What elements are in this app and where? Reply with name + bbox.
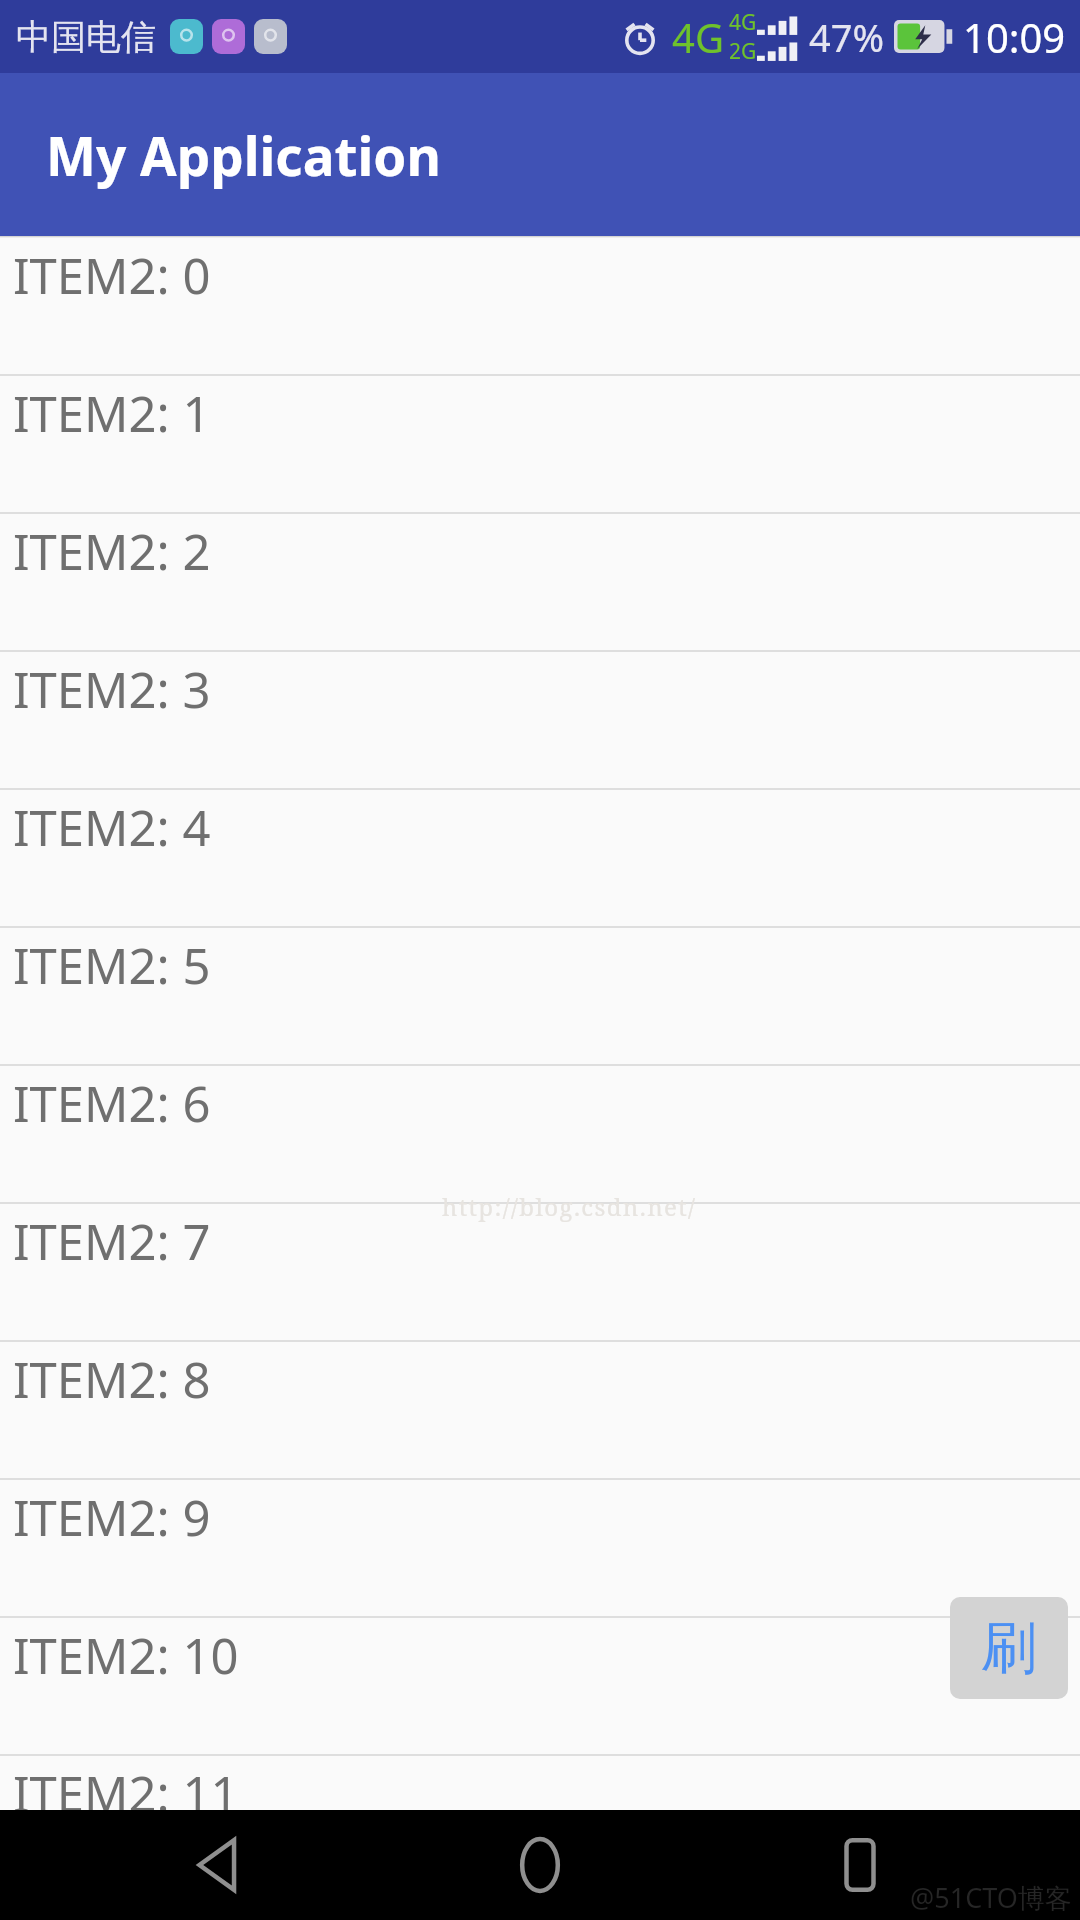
- button[interactable]: ITEM2: 1: [0, 376, 1080, 514]
- button[interactable]: 刷: [950, 1597, 1068, 1699]
- staticText: 刷: [981, 1613, 1037, 1684]
- button[interactable]: ITEM2: 0: [0, 238, 1080, 376]
- staticText: ITEM2: 10: [13, 1622, 239, 1689]
- staticText: 2G: [729, 37, 757, 66]
- staticText: ITEM2: 11: [13, 1760, 239, 1810]
- staticText: 4G: [729, 8, 757, 37]
- button[interactable]: ITEM2: 7: [0, 1204, 1080, 1342]
- button[interactable]: ITEM2: 8: [0, 1342, 1080, 1480]
- staticText: ITEM2: 6: [13, 1070, 211, 1137]
- staticText: 4G: [672, 10, 724, 64]
- staticText: ITEM2: 4: [13, 794, 211, 861]
- staticText: 47%: [809, 11, 885, 63]
- staticText: ITEM2: 9: [13, 1484, 211, 1551]
- button[interactable]: ITEM2: 11: [0, 1756, 1080, 1810]
- button[interactable]: ITEM2: 3: [0, 652, 1080, 790]
- staticText: ITEM2: 0: [13, 242, 211, 309]
- staticText: ITEM2: 5: [13, 932, 211, 999]
- button[interactable]: ITEM2: 2: [0, 514, 1080, 652]
- button[interactable]: ITEM2: 9: [0, 1480, 1080, 1618]
- button[interactable]: ITEM2: 10: [0, 1618, 1080, 1756]
- staticText: ITEM2: 3: [13, 656, 211, 723]
- button[interactable]: ITEM2: 4: [0, 790, 1080, 928]
- staticText: ITEM2: 7: [13, 1208, 211, 1275]
- staticText: ITEM2: 2: [13, 518, 211, 585]
- staticText: ITEM2: 8: [13, 1346, 211, 1413]
- button[interactable]: Home: [440, 1810, 640, 1920]
- button[interactable]: Recents: [760, 1810, 960, 1920]
- staticText: @51CTO博客: [910, 1879, 1072, 1916]
- button[interactable]: Back: [120, 1810, 320, 1920]
- button[interactable]: ITEM2: 5: [0, 928, 1080, 1066]
- staticText: My Application: [46, 119, 441, 191]
- staticText: http://blog.csdn.net/: [442, 1190, 697, 1223]
- staticText: 10:09: [963, 10, 1066, 64]
- staticText: ITEM2: 1: [13, 380, 211, 447]
- button[interactable]: ITEM2: 6: [0, 1066, 1080, 1204]
- staticText: 中国电信: [16, 15, 156, 59]
